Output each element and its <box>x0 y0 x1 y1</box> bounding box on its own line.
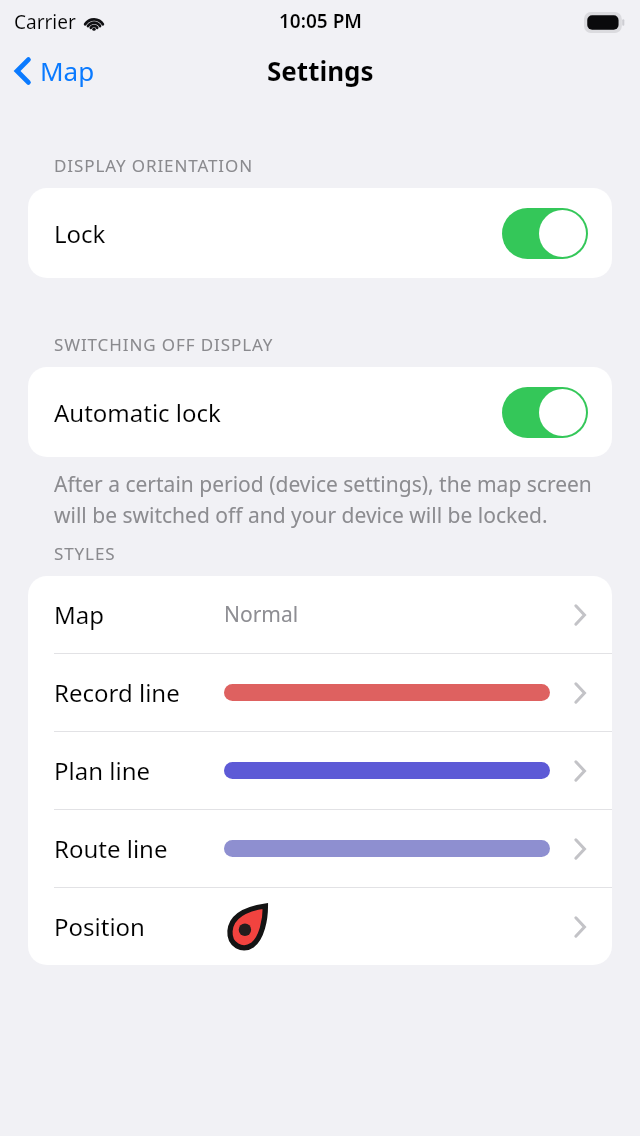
button[interactable]: Lock <box>28 188 612 278</box>
staticText: Record line <box>54 676 180 709</box>
staticText: 10:05 PM <box>279 8 362 34</box>
staticText: Automatic lock <box>54 396 221 429</box>
staticText: Map <box>40 53 95 88</box>
staticText: SWITCHING OFF DISPLAY <box>54 333 274 356</box>
staticText: Lock <box>54 217 106 250</box>
button[interactable]: Toggle on <box>502 208 588 259</box>
staticText: Normal <box>224 600 299 629</box>
button[interactable]: Record line <box>28 654 612 731</box>
staticText: Settings <box>267 53 374 88</box>
staticText: STYLES <box>54 542 116 565</box>
staticText: After a certain period (device settings)… <box>54 470 600 529</box>
staticText: Map <box>54 598 104 631</box>
button[interactable]: Map <box>0 47 107 94</box>
button[interactable]: Plan line <box>28 732 612 809</box>
staticText: Carrier <box>14 9 76 35</box>
button[interactable]: Map <box>28 576 612 653</box>
staticText: Route line <box>54 832 168 865</box>
button[interactable]: Position <box>28 888 612 965</box>
staticText: DISPLAY ORIENTATION <box>54 154 254 177</box>
staticText: Position <box>54 910 145 943</box>
staticText: Plan line <box>54 754 150 787</box>
button[interactable]: Route line <box>28 810 612 887</box>
button[interactable]: Toggle on <box>502 387 588 438</box>
button[interactable]: Automatic lock <box>28 367 612 457</box>
